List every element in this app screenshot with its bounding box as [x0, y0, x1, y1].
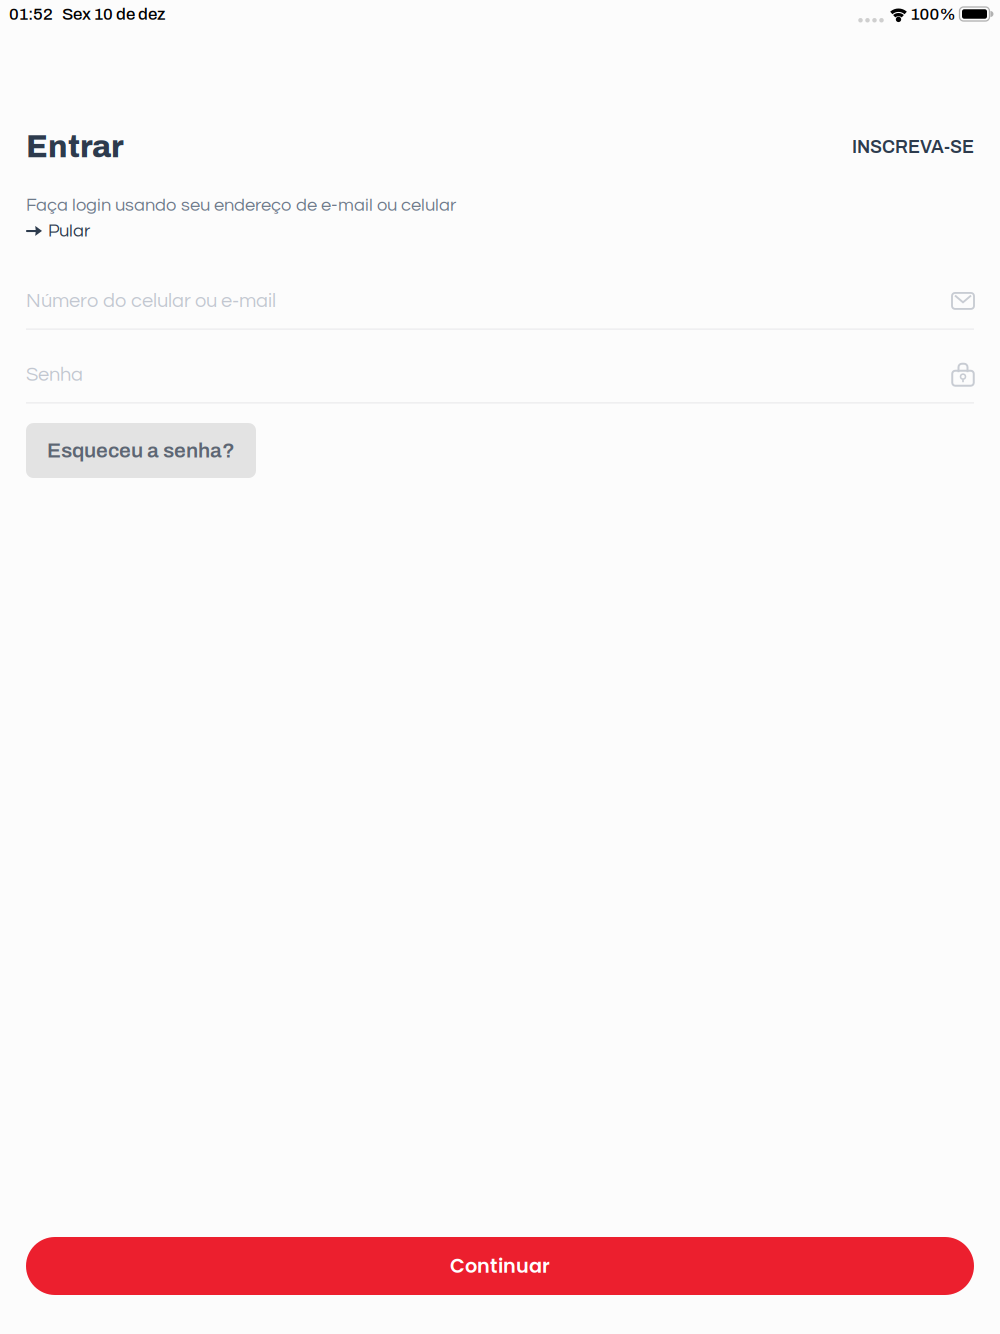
staticText: Senha	[26, 364, 83, 385]
button[interactable]: Senha	[26, 330, 974, 403]
button[interactable]: Número do celular ou e-mail	[26, 256, 974, 330]
staticText: Faça login usando seu endereço de e-mail…	[26, 196, 456, 215]
staticText: Continuar	[450, 1252, 550, 1280]
staticText: Esqueceu a senha?	[47, 439, 235, 462]
button[interactable]: Esqueceu a senha?	[26, 423, 256, 478]
button[interactable]: INSCREVA-SE	[852, 137, 974, 157]
staticText: Sex 10 de dez	[62, 5, 166, 23]
staticText: 100%	[910, 5, 955, 23]
staticText: Entrar	[26, 130, 124, 164]
staticText: Número do celular ou e-mail	[26, 291, 276, 311]
button[interactable]: Continuar	[26, 1237, 974, 1295]
staticText: Pular	[48, 222, 90, 240]
staticText: 01:52	[9, 5, 53, 23]
button[interactable]: Pular	[26, 222, 90, 240]
staticText: INSCREVA-SE	[852, 137, 974, 157]
